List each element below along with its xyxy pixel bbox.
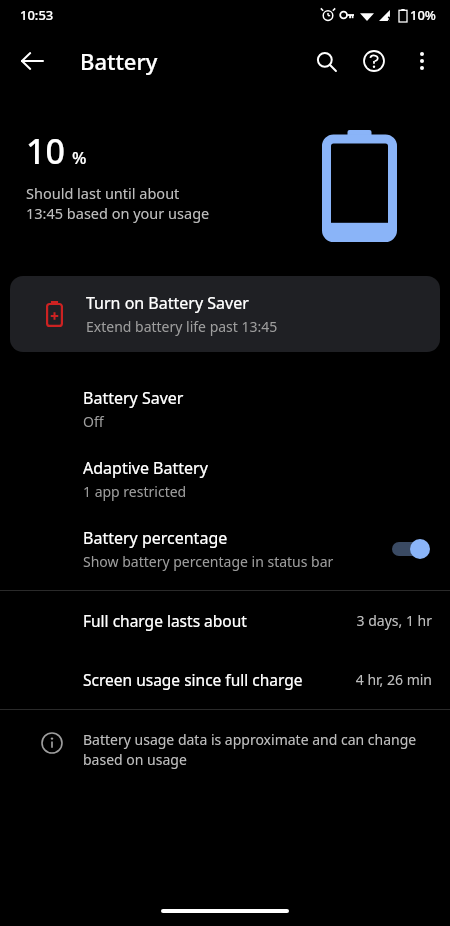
staticText: Adaptive Battery	[83, 457, 208, 479]
button[interactable]: More options	[398, 37, 446, 85]
staticText: Full charge lasts about	[83, 610, 247, 631]
staticText: 4 hr, 26 min	[355, 670, 432, 689]
staticText: Battery Saver	[83, 387, 184, 409]
staticText: 3 days, 1 hr	[356, 611, 432, 630]
staticText: 10%	[410, 6, 436, 24]
button[interactable]: Back	[8, 37, 56, 85]
staticText: 10:53	[20, 6, 54, 24]
button[interactable]: Battery Saver	[0, 374, 450, 444]
button[interactable]: Help	[350, 37, 398, 85]
staticText: Extend battery life past 13:45	[86, 317, 278, 336]
staticText: Turn on Battery Saver	[86, 292, 249, 314]
button[interactable]: Full charge lasts about	[0, 591, 450, 650]
staticText: Show battery percentage in status bar	[83, 552, 334, 571]
button[interactable]: Adaptive Battery	[0, 444, 450, 514]
button[interactable]: Screen usage since full charge	[0, 650, 450, 709]
staticText: Off	[83, 412, 104, 431]
button[interactable]: Battery percentage	[0, 514, 450, 584]
button[interactable]: Turn on Battery Saver	[10, 276, 440, 352]
staticText: Battery usage data is approximate and ca…	[83, 730, 424, 769]
staticText: 13:45 based on your usage	[26, 203, 210, 223]
staticText: 10	[26, 128, 65, 174]
staticText: Battery percentage	[83, 527, 228, 549]
button[interactable]: Search	[302, 37, 350, 85]
staticText: Screen usage since full charge	[83, 669, 303, 690]
staticText: %	[72, 146, 87, 169]
staticText: Battery	[80, 46, 158, 76]
staticText: Should last until about	[26, 183, 180, 203]
staticText: 1 app restricted	[83, 482, 187, 501]
